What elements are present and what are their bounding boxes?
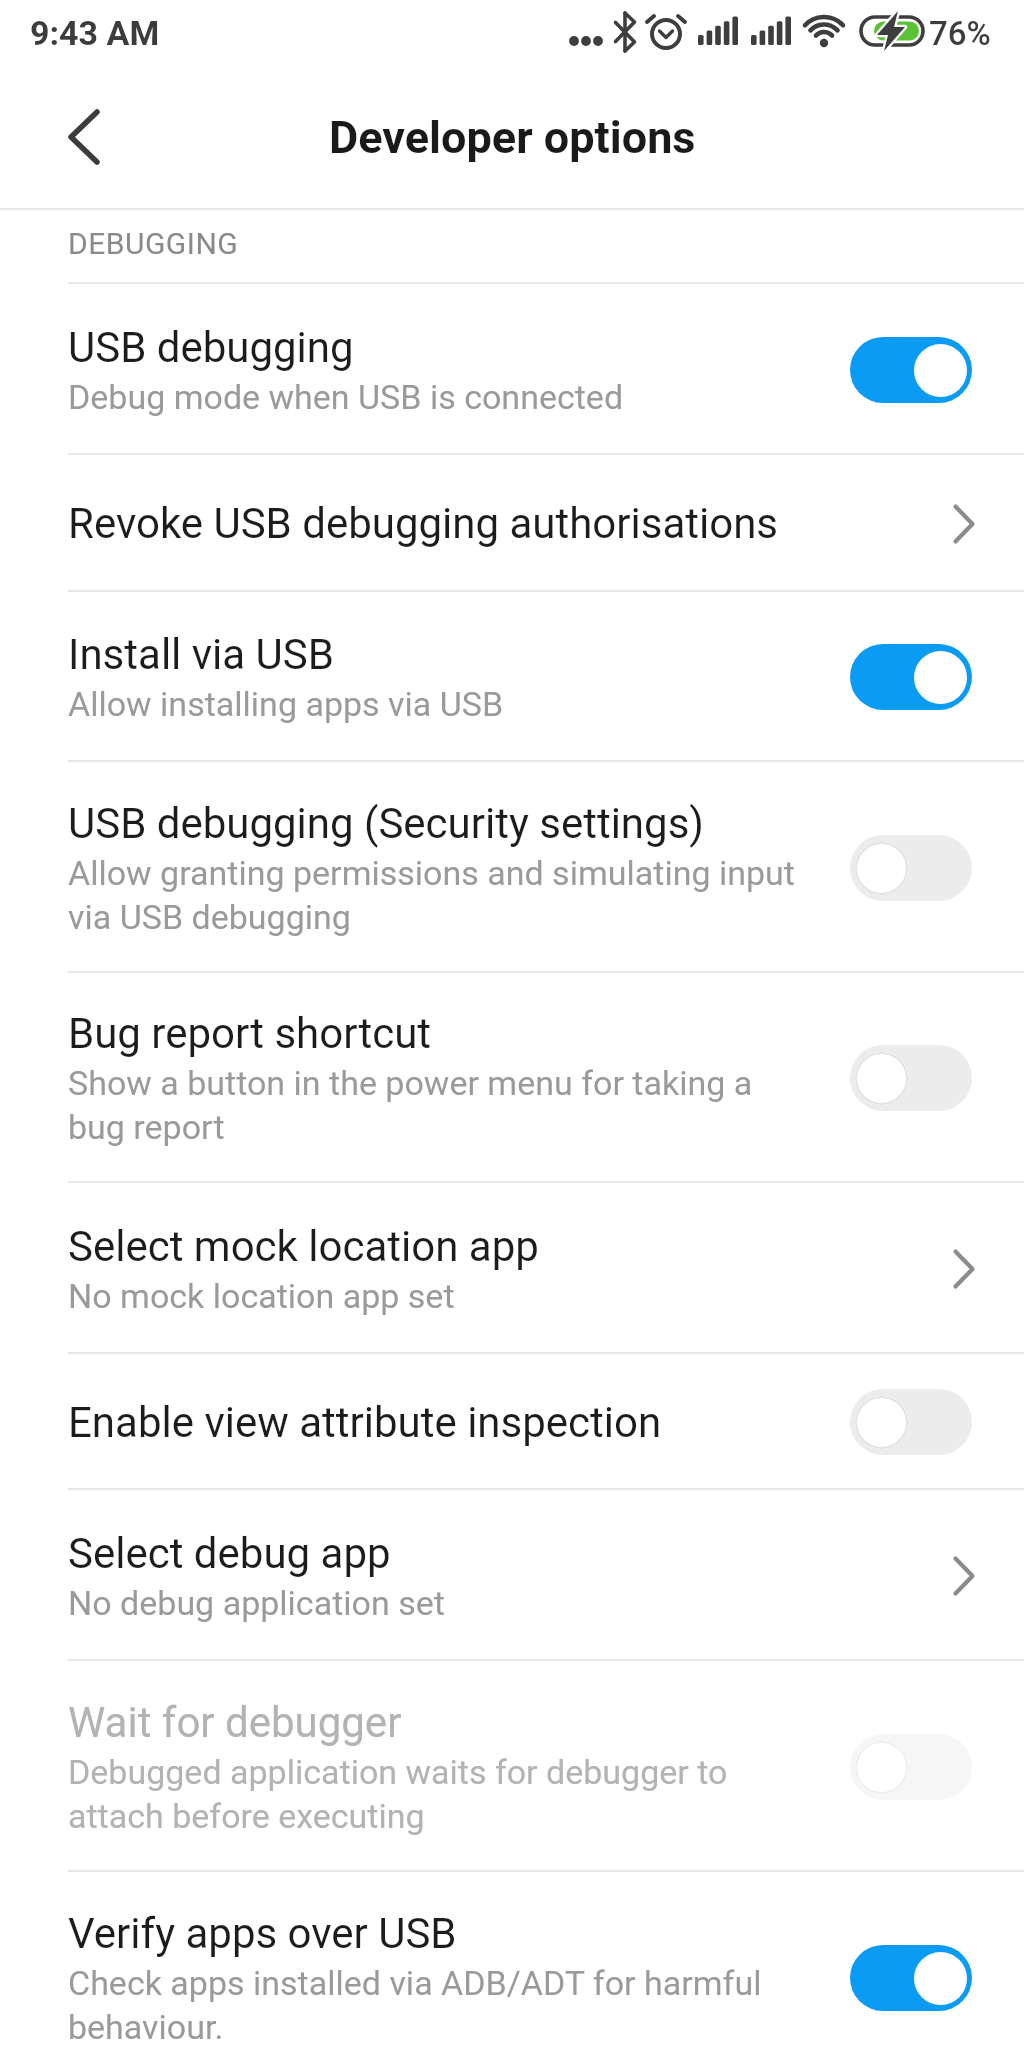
staticText: DEBUGGING <box>68 226 239 261</box>
staticText: Debug mode when USB is connected <box>68 377 624 417</box>
staticText: Developer options <box>329 111 696 164</box>
staticText: Revoke USB debugging authorisations <box>68 499 779 548</box>
staticText: Select debug app <box>68 1529 391 1578</box>
button[interactable] <box>850 1389 972 1455</box>
staticText: Enable view attribute inspection <box>68 1398 662 1447</box>
button[interactable]: Select mock location app <box>0 1183 1024 1354</box>
button[interactable]: Enable view attribute inspection <box>0 1354 1024 1490</box>
button[interactable] <box>850 1734 972 1800</box>
button[interactable]: USB debugging <box>0 284 1024 455</box>
button[interactable] <box>850 337 972 403</box>
staticText: No debug application set <box>68 1583 445 1623</box>
button[interactable]: Install via USB <box>0 592 1024 762</box>
staticText: Allow granting permissions and simulatin… <box>68 853 795 937</box>
staticText: Show a button in the power menu for taki… <box>68 1063 753 1147</box>
staticText: USB debugging <box>68 323 354 372</box>
staticText: Install via USB <box>68 630 334 679</box>
button[interactable] <box>52 105 116 169</box>
staticText: Check apps installed via ADB/ADT for har… <box>68 1963 762 2047</box>
staticText: No mock location app set <box>68 1276 455 1316</box>
staticText: Bug report shortcut <box>68 1009 432 1058</box>
button[interactable]: Revoke USB debugging authorisations <box>0 455 1024 592</box>
staticText: Wait for debugger <box>68 1698 402 1747</box>
button[interactable] <box>850 644 972 710</box>
staticText: Allow installing apps via USB <box>68 684 504 724</box>
staticText: 9:43 AM <box>30 13 160 53</box>
button[interactable] <box>850 835 972 901</box>
staticText: Verify apps over USB <box>68 1909 457 1958</box>
staticText: Select mock location app <box>68 1222 539 1271</box>
button[interactable] <box>850 1945 972 2011</box>
staticText: Debugged application waits for debugger … <box>68 1752 728 1836</box>
staticText: 76% <box>929 14 991 53</box>
button[interactable]: Bug report shortcut <box>0 973 1024 1183</box>
button[interactable]: Verify apps over USB <box>0 1872 1024 2048</box>
button[interactable] <box>850 1045 972 1111</box>
staticText: USB debugging (Security settings) <box>68 799 704 848</box>
button[interactable]: Wait for debugger <box>0 1661 1024 1872</box>
button[interactable]: Select debug app <box>0 1490 1024 1661</box>
button[interactable]: USB debugging (Security settings) <box>0 762 1024 973</box>
